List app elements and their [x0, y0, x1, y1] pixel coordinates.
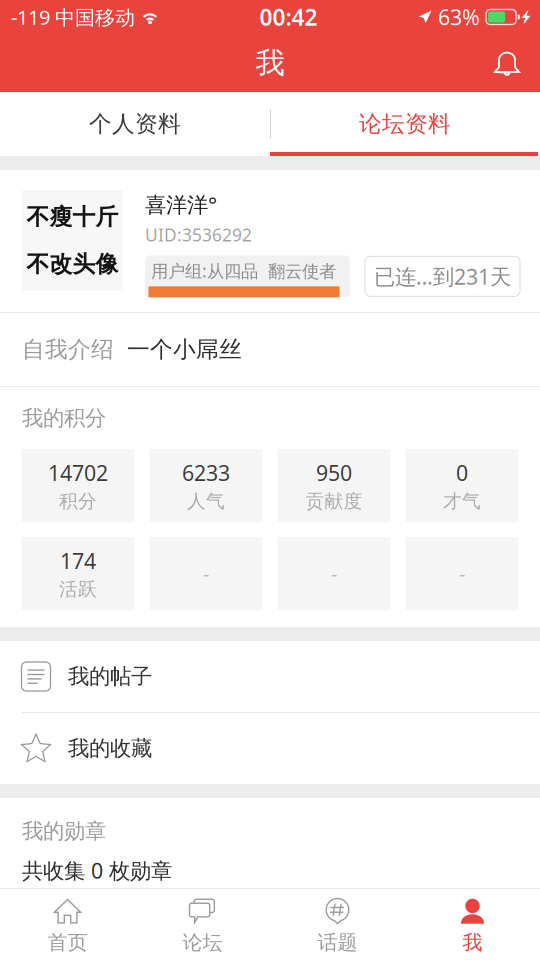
button[interactable]: 论坛: [135, 888, 270, 960]
staticText: 论坛资料: [359, 110, 451, 138]
button[interactable]: 通知: [474, 34, 540, 92]
button[interactable]: 个人资料: [0, 92, 270, 156]
staticText: 950: [316, 459, 352, 487]
staticText: 0: [456, 459, 468, 487]
staticText: 喜洋洋°: [145, 190, 217, 218]
button[interactable]: 我的帖子: [0, 641, 540, 712]
staticText: 00:42: [260, 2, 318, 32]
staticText: 共收集 0 枚勋章: [22, 856, 172, 884]
staticText: 6233: [182, 459, 230, 487]
staticText: 我的积分: [22, 405, 106, 431]
staticText: 个人资料: [89, 110, 181, 138]
staticText: 话题: [317, 930, 357, 955]
button[interactable]: 我: [405, 888, 540, 960]
staticText: 贡献度: [305, 490, 362, 513]
staticText: 我: [255, 45, 284, 81]
staticText: -119 中国移动: [11, 4, 135, 30]
staticText: 积分: [59, 490, 97, 513]
staticText: 174: [60, 547, 96, 575]
staticText: 自我介绍: [22, 336, 114, 363]
staticText: 我的勋章: [22, 818, 106, 844]
staticText: 我的收藏: [68, 735, 152, 762]
staticText: 用户组:从四品 翻云使者: [151, 259, 336, 282]
staticText: 活跃: [59, 578, 97, 601]
staticText: 不瘦十斤: [26, 203, 118, 231]
staticText: 一个小屌丝: [127, 336, 242, 363]
staticText: -: [203, 560, 209, 587]
button[interactable]: 首页: [0, 888, 135, 960]
staticText: -: [331, 560, 337, 587]
staticText: 首页: [47, 930, 87, 955]
button[interactable]: 论坛资料: [270, 92, 540, 156]
button[interactable]: 话题: [270, 888, 405, 960]
staticText: 14702: [48, 459, 108, 487]
button[interactable]: 我的收藏: [0, 713, 540, 784]
staticText: 人气: [187, 490, 225, 513]
staticText: 才气: [443, 490, 481, 513]
staticText: 论坛: [182, 930, 222, 955]
staticText: -: [459, 560, 465, 587]
staticText: 我的帖子: [68, 663, 152, 690]
staticText: 不改头像: [26, 250, 118, 278]
staticText: 已连…到231天: [374, 262, 511, 290]
staticText: UID:3536292: [145, 223, 252, 246]
staticText: 我: [462, 930, 482, 955]
staticText: 63%: [438, 3, 480, 31]
